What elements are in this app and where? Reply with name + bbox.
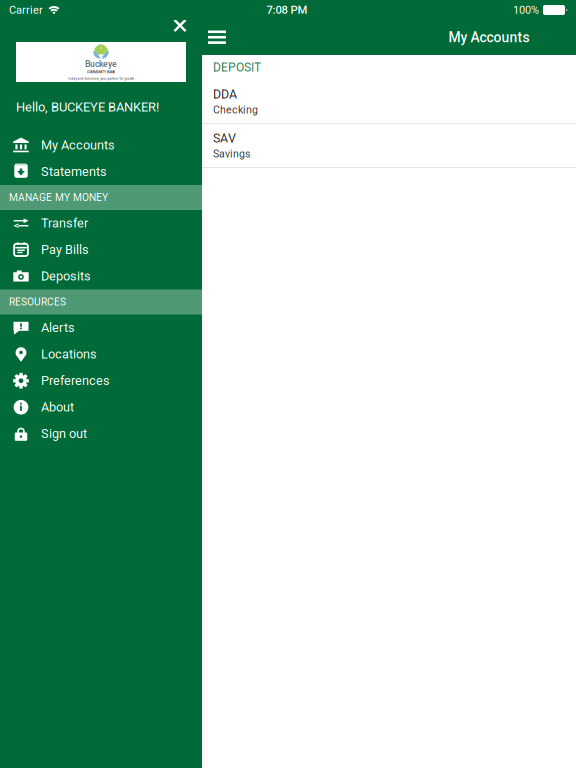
staticText: Locations [41,347,97,362]
button[interactable]: Transfer [0,210,202,236]
staticText: Checking [213,104,258,116]
staticText: Alerts [41,320,75,335]
staticText: Preferences [41,373,110,388]
staticText: COMMUNITY BANK [87,70,115,74]
staticText: Statements [41,164,107,179]
staticText: Transfer [41,216,88,231]
staticText: Pay Bills [41,242,89,257]
staticText: Sign out [41,426,87,441]
staticText: MANAGE MY MONEY [9,191,108,203]
button[interactable]: Preferences [0,367,202,394]
button[interactable]: Deposits [0,263,202,289]
button[interactable]: My Accounts [0,132,202,158]
staticText: Buckeye [85,59,117,69]
button[interactable]: SAV [202,124,576,167]
button[interactable]: Statements [0,158,202,185]
staticText: 7:08 PM [266,3,307,17]
staticText: My Accounts [41,138,115,153]
staticText: Today and tomorrow, your partner for gro… [67,77,134,80]
staticText: Carrier [9,4,43,16]
staticText: RESOURCES [9,296,66,308]
staticText: SAV [213,131,236,145]
button[interactable]: Sign out [0,420,202,447]
button[interactable]: Alerts [0,314,202,341]
button[interactable]: Close menu [166,14,194,36]
staticText: 100% [513,4,539,16]
button[interactable]: About [0,394,202,420]
staticText: DEPOSIT [213,60,261,75]
staticText: My Accounts [448,29,529,46]
button[interactable]: DDA [202,80,576,123]
staticText: Deposits [41,269,91,284]
staticText: Savings [213,148,250,160]
staticText: Hello, BUCKEYE BANKER! [16,99,159,114]
button[interactable]: Menu [202,20,238,54]
button[interactable]: Locations [0,341,202,367]
staticText: About [41,400,74,415]
staticText: DDA [213,87,237,101]
button[interactable]: Pay Bills [0,236,202,263]
